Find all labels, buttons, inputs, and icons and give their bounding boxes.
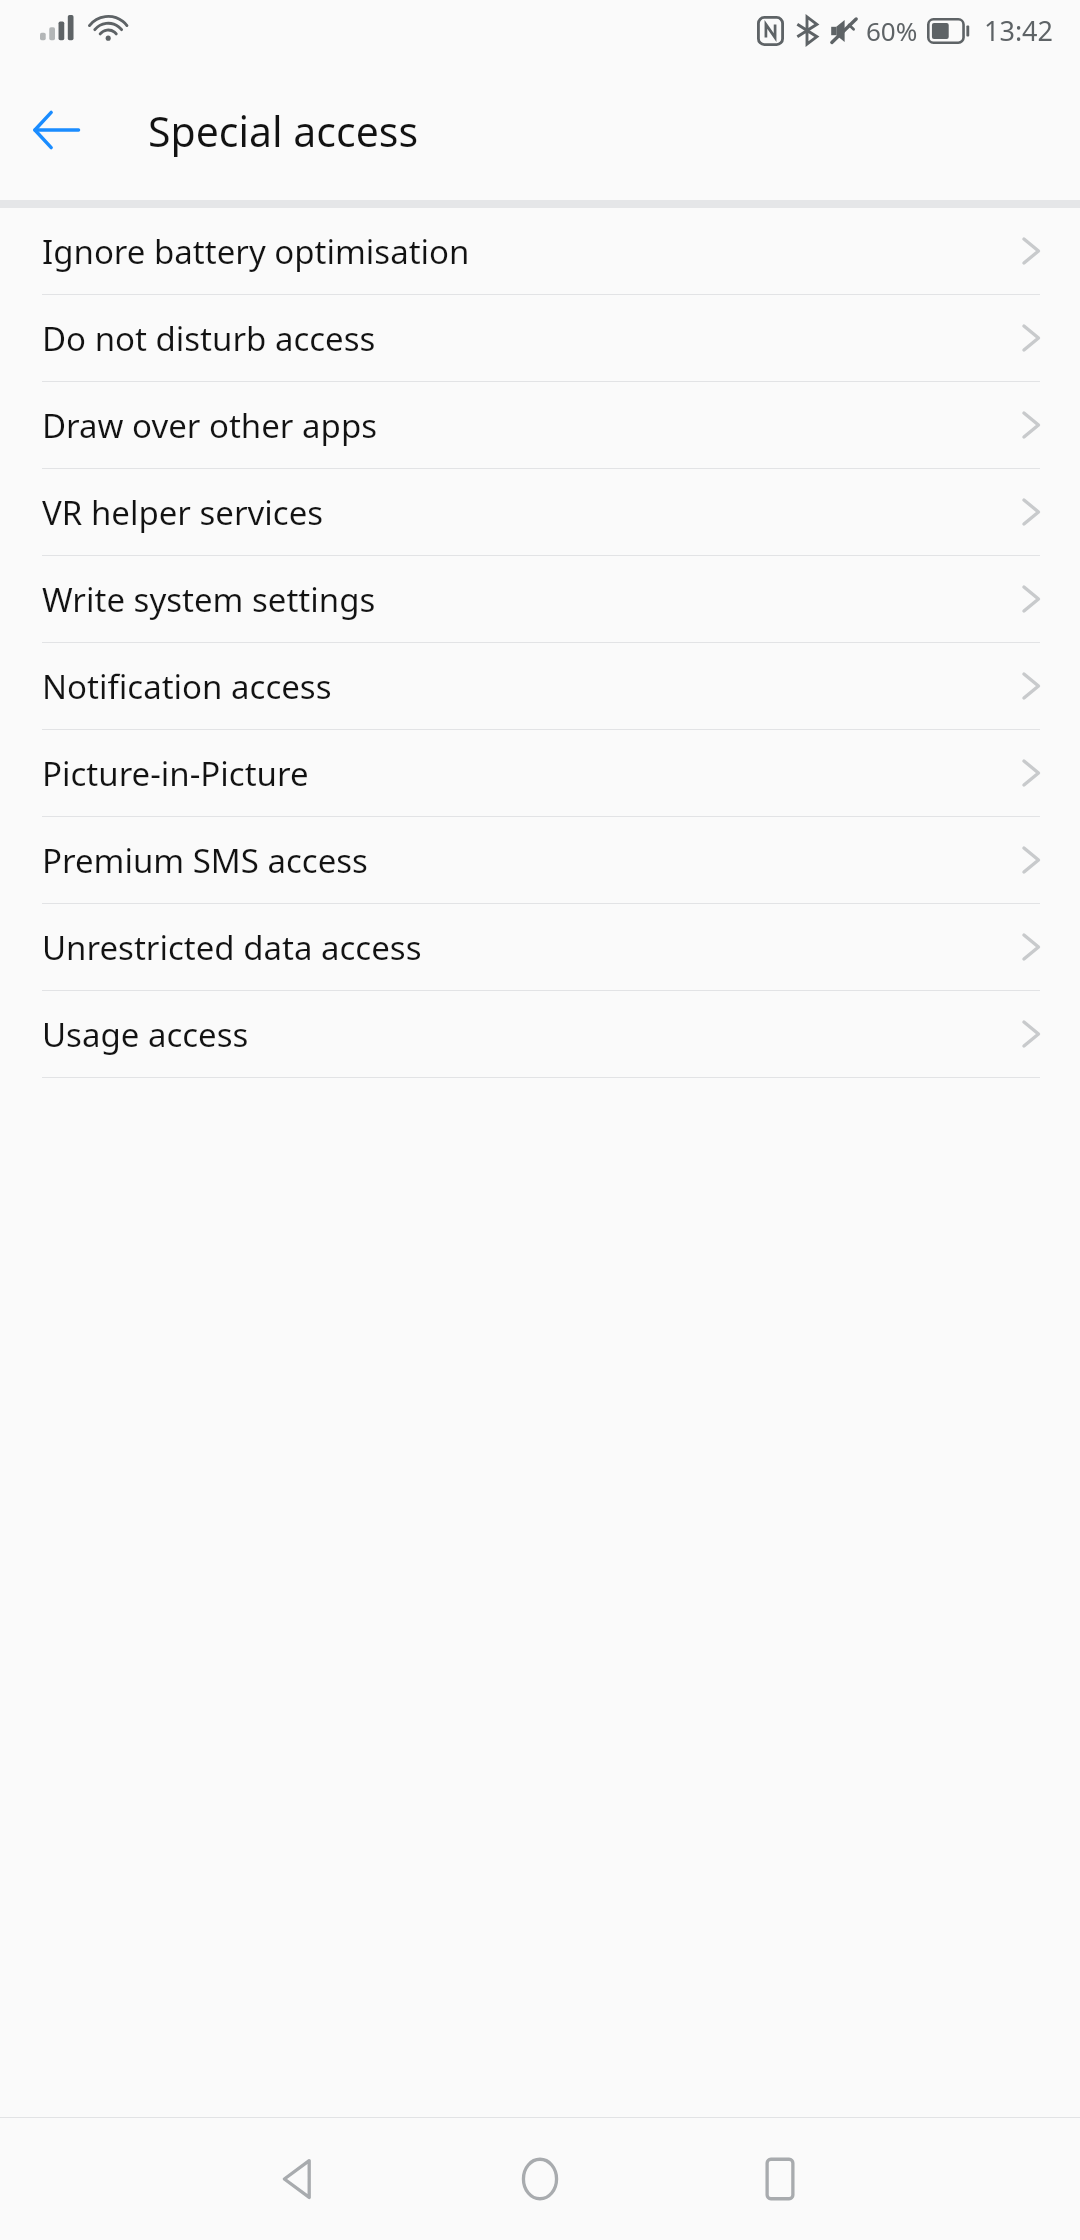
button[interactable]: Draw over other apps bbox=[0, 382, 1080, 468]
staticText: Ignore battery optimisation bbox=[42, 229, 470, 274]
staticText: 13:42 bbox=[984, 12, 1054, 49]
button[interactable]: Usage access bbox=[0, 991, 1080, 1077]
button[interactable]: Unrestricted data access bbox=[0, 904, 1080, 990]
staticText: Premium SMS access bbox=[42, 838, 368, 883]
button[interactable]: Notification access bbox=[0, 643, 1080, 729]
staticText: Usage access bbox=[42, 1012, 249, 1057]
staticText: Write system settings bbox=[42, 577, 376, 622]
button[interactable]: Back bbox=[245, 2124, 355, 2234]
staticText: VR helper services bbox=[42, 490, 324, 535]
button[interactable]: VR helper services bbox=[0, 469, 1080, 555]
staticText: Notification access bbox=[42, 664, 332, 709]
button[interactable]: Do not disturb access bbox=[0, 295, 1080, 381]
button[interactable]: Home bbox=[485, 2124, 595, 2234]
staticText: Special access bbox=[148, 103, 419, 159]
button[interactable]: Write system settings bbox=[0, 556, 1080, 642]
button[interactable]: Premium SMS access bbox=[0, 817, 1080, 903]
button[interactable]: Ignore battery optimisation bbox=[0, 208, 1080, 294]
button[interactable]: Recent apps bbox=[725, 2124, 835, 2234]
staticText: Do not disturb access bbox=[42, 316, 376, 361]
staticText: 60% bbox=[866, 13, 918, 48]
button[interactable]: Back bbox=[18, 92, 94, 168]
button[interactable]: Picture-in-Picture bbox=[0, 730, 1080, 816]
staticText: Picture-in-Picture bbox=[42, 751, 309, 796]
staticText: Unrestricted data access bbox=[42, 925, 422, 970]
staticText: Draw over other apps bbox=[42, 403, 377, 448]
